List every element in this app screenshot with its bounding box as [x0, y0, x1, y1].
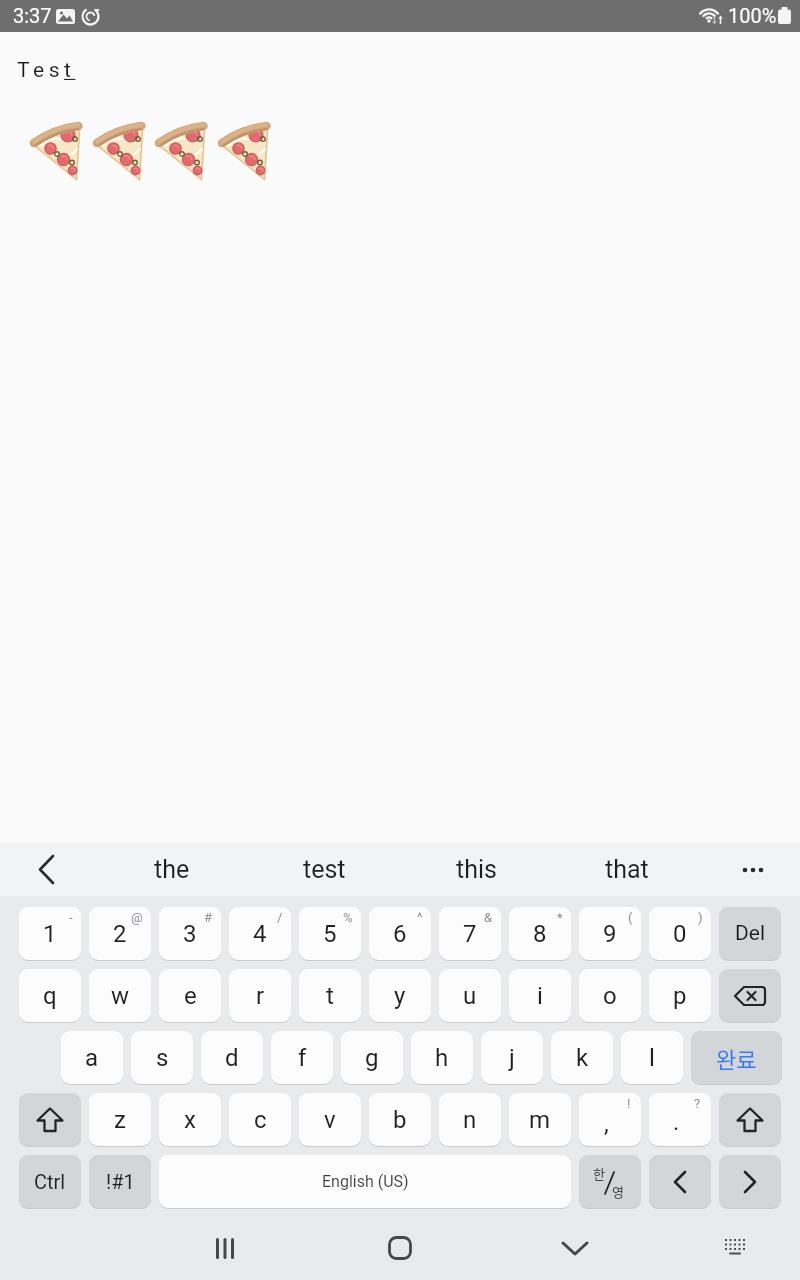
button[interactable]: .: [649, 1093, 711, 1146]
button[interactable]: m: [509, 1093, 571, 1146]
staticText: 3:37: [13, 4, 52, 27]
button[interactable]: this: [416, 843, 536, 896]
staticText: @: [131, 910, 143, 925]
button[interactable]: v: [299, 1093, 361, 1146]
button[interactable]: q: [19, 969, 81, 1022]
button[interactable]: f: [271, 1031, 333, 1084]
button[interactable]: that: [567, 843, 687, 896]
staticText: Test: [17, 58, 76, 83]
button[interactable]: y: [369, 969, 431, 1022]
staticText: !#1: [106, 1170, 135, 1193]
staticText: .: [673, 1108, 680, 1136]
button[interactable]: k: [551, 1031, 613, 1084]
button[interactable]: 5: [299, 907, 361, 960]
button[interactable]: !#1: [89, 1155, 151, 1208]
staticText: ?: [694, 1096, 701, 1111]
button[interactable]: Ctrl: [19, 1155, 81, 1208]
staticText: English (US): [322, 1172, 409, 1191]
button[interactable]: [710, 1223, 760, 1273]
staticText: 한: [593, 1164, 605, 1183]
staticText: 1: [43, 920, 57, 948]
button[interactable]: w: [89, 969, 151, 1022]
staticText: z: [114, 1106, 126, 1134]
staticText: 4: [253, 920, 267, 948]
button[interactable]: [719, 1093, 781, 1146]
button[interactable]: j: [481, 1031, 543, 1084]
button[interactable]: 7: [439, 907, 501, 960]
staticText: x: [184, 1106, 196, 1134]
staticText: r: [256, 982, 265, 1010]
button[interactable]: [728, 843, 778, 896]
button[interactable]: Del: [719, 907, 781, 960]
button[interactable]: b: [369, 1093, 431, 1146]
staticText: !: [627, 1096, 631, 1111]
button[interactable]: [719, 969, 781, 1022]
staticText: the: [154, 855, 190, 884]
staticText: k: [576, 1044, 589, 1072]
button[interactable]: [719, 1155, 781, 1208]
button[interactable]: p: [649, 969, 711, 1022]
button[interactable]: l: [621, 1031, 683, 1084]
button[interactable]: 6: [369, 907, 431, 960]
staticText: #: [204, 910, 213, 925]
staticText: 8: [533, 920, 547, 948]
staticText: u: [463, 982, 477, 1010]
staticText: j: [509, 1044, 515, 1072]
button[interactable]: z: [89, 1093, 151, 1146]
button[interactable]: 한: [579, 1155, 641, 1208]
staticText: 5: [323, 920, 337, 948]
button[interactable]: [22, 843, 72, 896]
button[interactable]: h: [411, 1031, 473, 1084]
staticText: Ctrl: [34, 1170, 66, 1193]
button[interactable]: u: [439, 969, 501, 1022]
button[interactable]: [375, 1223, 425, 1273]
staticText: 6: [393, 920, 407, 948]
staticText: w: [111, 982, 130, 1010]
button[interactable]: n: [439, 1093, 501, 1146]
staticText: test: [303, 855, 346, 884]
button[interactable]: [550, 1223, 600, 1273]
staticText: 완료: [716, 1042, 757, 1074]
button[interactable]: 완료: [691, 1031, 782, 1084]
button[interactable]: d: [201, 1031, 263, 1084]
button[interactable]: [19, 1093, 81, 1146]
button[interactable]: e: [159, 969, 221, 1022]
staticText: s: [156, 1044, 169, 1072]
button[interactable]: x: [159, 1093, 221, 1146]
button[interactable]: r: [229, 969, 291, 1022]
button[interactable]: [649, 1155, 711, 1208]
staticText: (: [628, 910, 633, 925]
staticText: a: [85, 1044, 99, 1072]
button[interactable]: 2: [89, 907, 151, 960]
staticText: q: [43, 982, 57, 1010]
staticText: /: [277, 910, 283, 925]
staticText: p: [673, 982, 687, 1010]
button[interactable]: the: [112, 843, 232, 896]
button[interactable]: 9: [579, 907, 641, 960]
button[interactable]: 0: [649, 907, 711, 960]
staticText: 영: [612, 1182, 624, 1201]
staticText: n: [463, 1106, 477, 1134]
button[interactable]: a: [61, 1031, 123, 1084]
button[interactable]: ,: [579, 1093, 641, 1146]
button[interactable]: s: [131, 1031, 193, 1084]
staticText: 9: [603, 920, 617, 948]
button[interactable]: 4: [229, 907, 291, 960]
button[interactable]: o: [579, 969, 641, 1022]
button[interactable]: t: [299, 969, 361, 1022]
button[interactable]: test: [264, 843, 384, 896]
staticText: ,: [604, 1110, 609, 1138]
staticText: l: [649, 1044, 655, 1072]
button[interactable]: 3: [159, 907, 221, 960]
button[interactable]: 8: [509, 907, 571, 960]
button[interactable]: 1: [19, 907, 81, 960]
staticText: -: [69, 910, 73, 925]
button[interactable]: i: [509, 969, 571, 1022]
staticText: 2: [113, 920, 127, 948]
button[interactable]: [201, 1223, 251, 1273]
button[interactable]: c: [229, 1093, 291, 1146]
staticText: &: [484, 910, 493, 925]
staticText: m: [529, 1106, 551, 1134]
button[interactable]: g: [341, 1031, 403, 1084]
button[interactable]: English (US): [159, 1155, 571, 1208]
